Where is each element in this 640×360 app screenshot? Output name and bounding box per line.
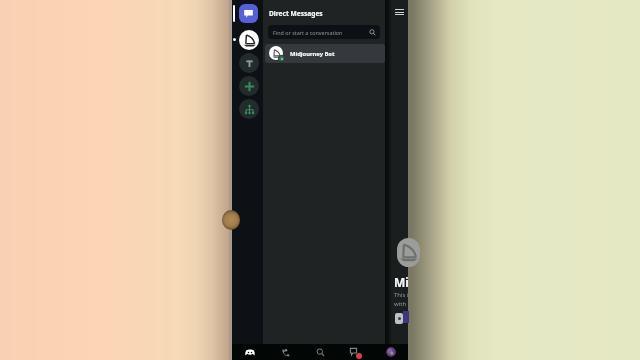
staticText: This i [394, 291, 409, 299]
button[interactable]: Calls [268, 344, 303, 360]
staticText: with [394, 300, 407, 308]
button[interactable]: Midjourney server [239, 30, 259, 50]
button[interactable]: Home [232, 344, 268, 360]
staticText: Direct Messages [269, 9, 323, 18]
staticText: Midjourney Bot [290, 50, 335, 58]
staticText: Find or start a conversation [273, 29, 343, 36]
button[interactable]: Discover [239, 99, 259, 119]
button[interactable]: Explore [239, 53, 259, 73]
button[interactable]: Direct Messages [239, 4, 258, 23]
button[interactable]: Midjourney Bot [265, 44, 385, 63]
button[interactable]: Search [303, 344, 338, 360]
button[interactable]: Notifications [349, 346, 362, 359]
button[interactable]: You [386, 347, 396, 357]
button[interactable]: Find or start a conversation [268, 25, 380, 39]
staticText: Mi [394, 274, 409, 290]
button[interactable]: Menu [395, 9, 404, 15]
button[interactable]: Add a server [239, 76, 259, 96]
